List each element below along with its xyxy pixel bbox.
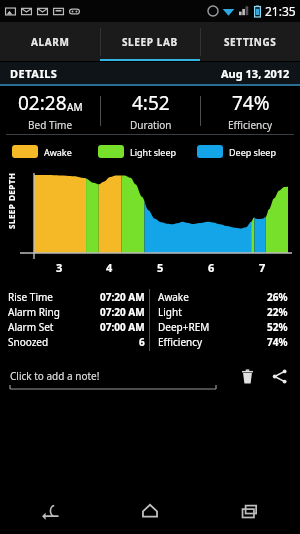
staticText: SETTINGS	[224, 35, 277, 49]
button[interactable]: Home	[100, 486, 200, 534]
staticText: ALARM	[31, 35, 70, 49]
staticText: Aug 13, 2012	[221, 66, 290, 81]
staticText: AM	[67, 100, 83, 114]
staticText: 6	[139, 335, 145, 349]
staticText: Bed Time	[28, 118, 73, 132]
staticText: 4	[106, 260, 113, 275]
staticText: 74%	[232, 90, 270, 116]
button[interactable]: SETTINGS	[200, 22, 300, 62]
button[interactable]: Delete	[234, 363, 260, 389]
staticText: DETAILS	[10, 66, 58, 81]
staticText: 07:00 AM	[100, 320, 145, 334]
button[interactable]: SLEEP LAB	[100, 22, 200, 62]
staticText: 21:35	[265, 3, 296, 19]
staticText: Awake	[44, 146, 72, 158]
staticText: 07:20 AM	[100, 290, 145, 304]
staticText: Click to add a note!	[10, 369, 100, 383]
staticText: Deep sleep	[229, 146, 276, 158]
staticText: Light	[158, 305, 182, 319]
staticText: 07:20 AM	[100, 305, 145, 319]
staticText: 26%	[267, 290, 288, 304]
button[interactable]: Click to add a note!	[10, 361, 224, 391]
button[interactable]: Share	[266, 363, 292, 389]
staticText: 02:28	[18, 90, 67, 116]
staticText: 74%	[267, 335, 288, 349]
staticText: 6	[208, 260, 215, 275]
staticText: 3	[56, 260, 63, 275]
staticText: Rise Time	[8, 290, 53, 304]
staticText: Efficiency	[228, 118, 273, 132]
button[interactable]: Recents	[200, 486, 300, 534]
staticText: Duration	[130, 118, 172, 132]
staticText: 4:52	[132, 90, 170, 116]
staticText: Light sleep	[130, 146, 177, 158]
staticText: Snoozed	[8, 335, 49, 349]
staticText: Efficiency	[158, 335, 203, 349]
staticText: 5	[157, 260, 164, 275]
staticText: 52%	[267, 320, 288, 334]
staticText: SLEEP LAB	[122, 35, 178, 49]
staticText: Deep+REM	[158, 320, 210, 334]
staticText: Alarm Ring	[8, 305, 60, 319]
staticText: SLEEP DEPTH	[6, 172, 17, 229]
staticText: 7	[259, 260, 266, 275]
button[interactable]: ALARM	[0, 22, 100, 62]
staticText: Alarm Set	[8, 320, 54, 334]
staticText: Awake	[158, 290, 189, 304]
button[interactable]: Back	[0, 486, 100, 534]
staticText: 22%	[267, 305, 288, 319]
